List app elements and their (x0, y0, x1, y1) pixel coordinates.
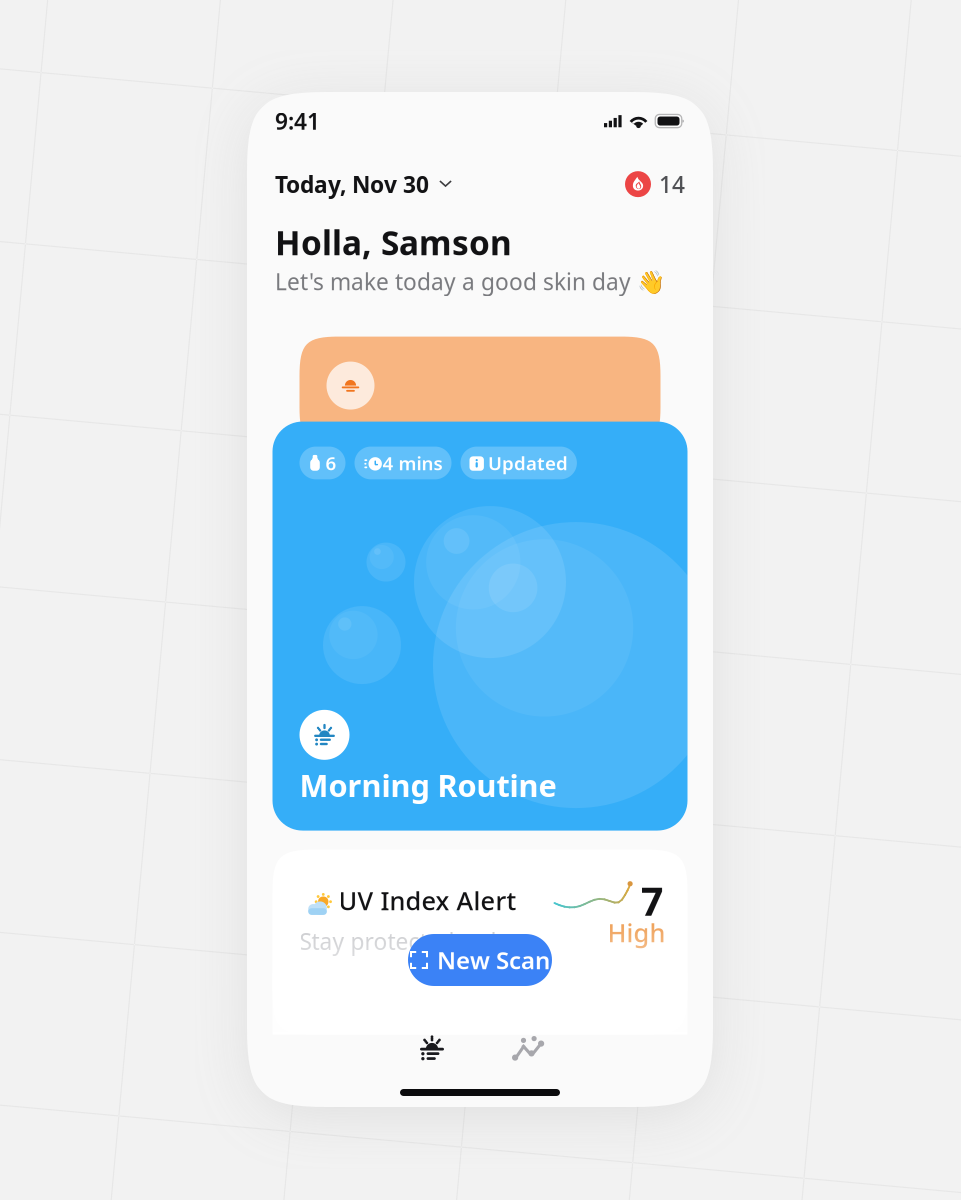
staticText: 7 (640, 874, 663, 927)
staticText: Updated (488, 451, 568, 475)
staticText: 6 (325, 451, 336, 475)
button[interactable]: Today, Nov 30 (275, 169, 453, 199)
staticText: 14 (659, 169, 685, 199)
staticText: 4 mins (382, 451, 442, 475)
staticText: Holla, Samson (275, 220, 512, 264)
staticText: High (607, 916, 665, 949)
button[interactable]: Trends (491, 1026, 565, 1070)
staticText: Let's make today a good skin day 👋 (275, 266, 665, 297)
staticText: UV Index Alert (338, 884, 516, 917)
staticText: Morning Routine (299, 765, 556, 805)
button[interactable]: New Scan (408, 934, 552, 986)
button[interactable]: 6 (272, 422, 687, 831)
button[interactable]: Routine (395, 1026, 469, 1070)
staticText: 9:41 (275, 106, 320, 136)
staticText: Stay protected today (299, 926, 521, 956)
button[interactable]: 14 (625, 169, 685, 199)
staticText: New Scan (437, 944, 550, 976)
staticText: Today, Nov 30 (275, 169, 429, 199)
